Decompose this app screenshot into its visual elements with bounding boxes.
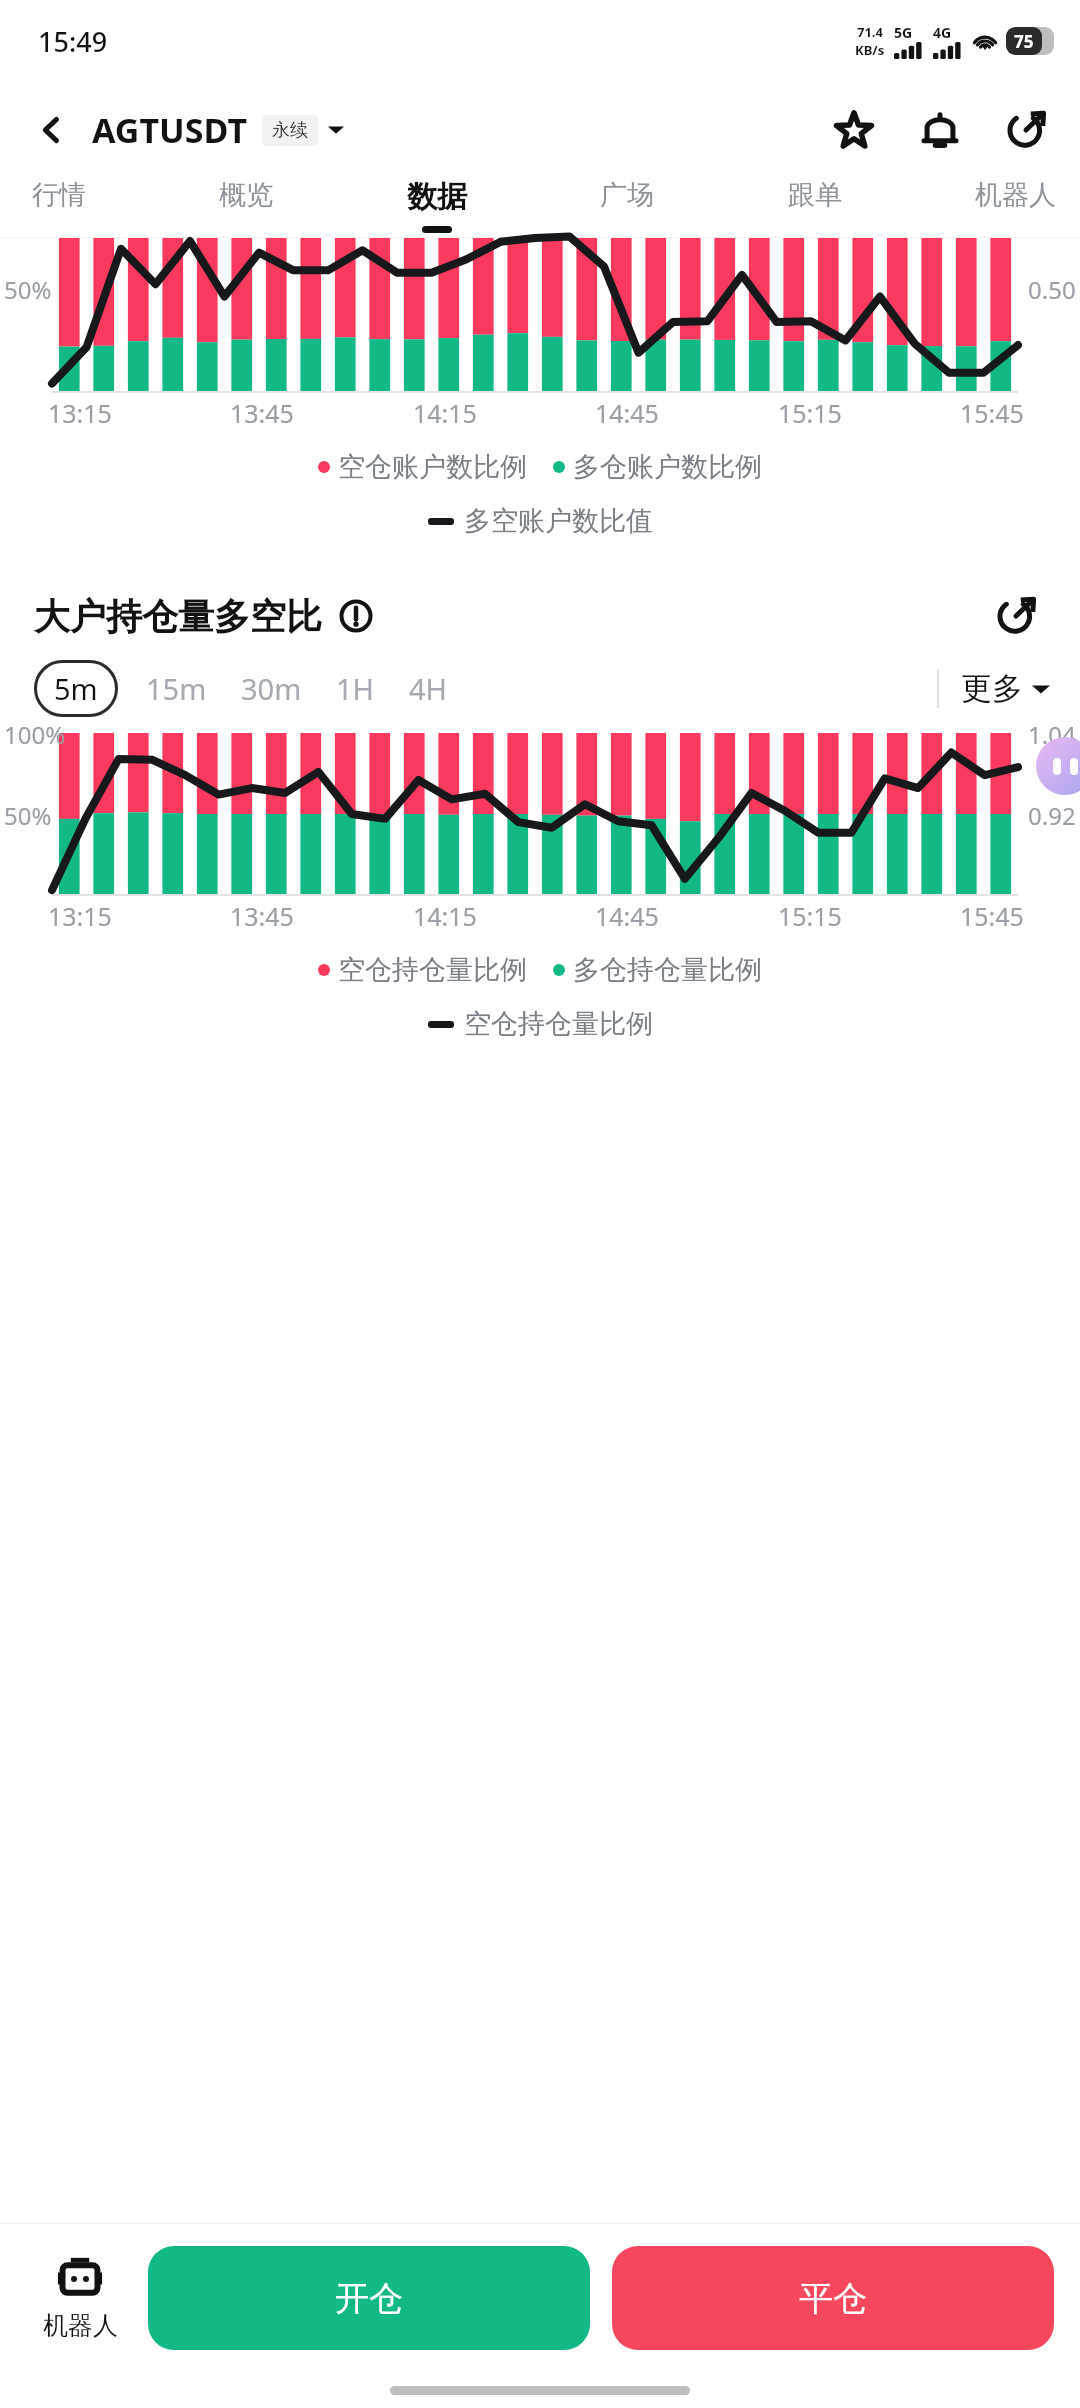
button[interactable]: 开仓: [148, 2246, 590, 2350]
button[interactable]: AI assistant: [1036, 737, 1080, 795]
staticText: 15:15: [778, 396, 842, 430]
button[interactable]: 机器人: [973, 178, 1058, 229]
staticText: 15:45: [960, 396, 1024, 430]
button[interactable]: 平仓: [612, 2246, 1054, 2350]
staticText: 14:45: [595, 396, 659, 430]
staticText: 机器人: [43, 2310, 118, 2341]
button[interactable]: Favorite: [824, 100, 884, 160]
staticText: 30m: [241, 669, 302, 708]
staticText: 14:15: [413, 396, 477, 430]
staticText: 概览: [219, 178, 273, 212]
staticText: 5m: [54, 669, 98, 708]
staticText: 平仓: [799, 2277, 867, 2320]
button[interactable]: 5m: [54, 669, 98, 708]
staticText: 50%: [4, 273, 52, 306]
staticText: 13:45: [230, 899, 294, 933]
staticText: 75: [1014, 30, 1034, 53]
staticText: 开仓: [335, 2277, 403, 2320]
button[interactable]: 15m: [146, 669, 207, 708]
staticText: 行情: [32, 178, 86, 212]
button[interactable]: 4H: [409, 669, 448, 708]
staticText: 广场: [600, 178, 654, 212]
staticText: 15:45: [960, 899, 1024, 933]
staticText: 多空账户数比值: [464, 504, 653, 538]
button[interactable]: 30m: [241, 669, 302, 708]
staticText: 多仓持仓量比例: [573, 953, 762, 987]
staticText: 15m: [146, 669, 207, 708]
staticText: 15:49: [38, 23, 108, 60]
staticText: 多仓账户数比例: [573, 450, 762, 484]
staticText: 4H: [409, 669, 448, 708]
staticText: 5G: [894, 23, 913, 42]
staticText: 0.50: [1028, 273, 1076, 306]
staticText: 14:15: [413, 899, 477, 933]
staticText: 跟单: [788, 178, 842, 212]
button[interactable]: 跟单: [786, 178, 844, 229]
staticText: KB/s: [855, 41, 885, 59]
staticText: 4G: [933, 23, 952, 42]
staticText: 机器人: [975, 178, 1056, 212]
button[interactable]: 机器人: [26, 2256, 134, 2341]
button[interactable]: 广场: [598, 178, 656, 229]
button[interactable]: 行情: [30, 178, 88, 229]
staticText: 0.92: [1028, 799, 1076, 832]
staticText: 15:15: [778, 899, 842, 933]
staticText: 1.04: [1028, 718, 1076, 751]
staticText: 空仓持仓量比例: [464, 1007, 653, 1041]
staticText: 13:15: [48, 396, 112, 430]
staticText: AGTUSDT: [92, 107, 248, 153]
staticText: 13:45: [230, 396, 294, 430]
button[interactable]: 1H: [336, 669, 375, 708]
staticText: 数据: [407, 178, 467, 216]
staticText: 永续: [272, 119, 308, 142]
button[interactable]: Share: [986, 586, 1046, 646]
button[interactable]: 数据: [405, 178, 469, 233]
staticText: 空仓账户数比例: [338, 450, 527, 484]
button[interactable]: 概览: [217, 178, 275, 229]
button[interactable]: Info: [334, 594, 378, 638]
staticText: 空仓持仓量比例: [338, 953, 527, 987]
button[interactable]: 永续: [272, 119, 308, 142]
staticText: 大户持仓量多空比: [34, 594, 322, 639]
button[interactable]: Notifications: [910, 100, 970, 160]
staticText: 100%: [4, 718, 66, 751]
button[interactable]: Back: [24, 102, 80, 158]
staticText: 1H: [336, 669, 375, 708]
staticText: 13:15: [48, 899, 112, 933]
staticText: 50%: [4, 799, 52, 832]
staticText: 14:45: [595, 899, 659, 933]
staticText: 更多: [961, 669, 1023, 708]
button[interactable]: 更多: [961, 663, 1050, 714]
staticText: 71.4: [857, 23, 883, 41]
button[interactable]: Share: [996, 100, 1056, 160]
